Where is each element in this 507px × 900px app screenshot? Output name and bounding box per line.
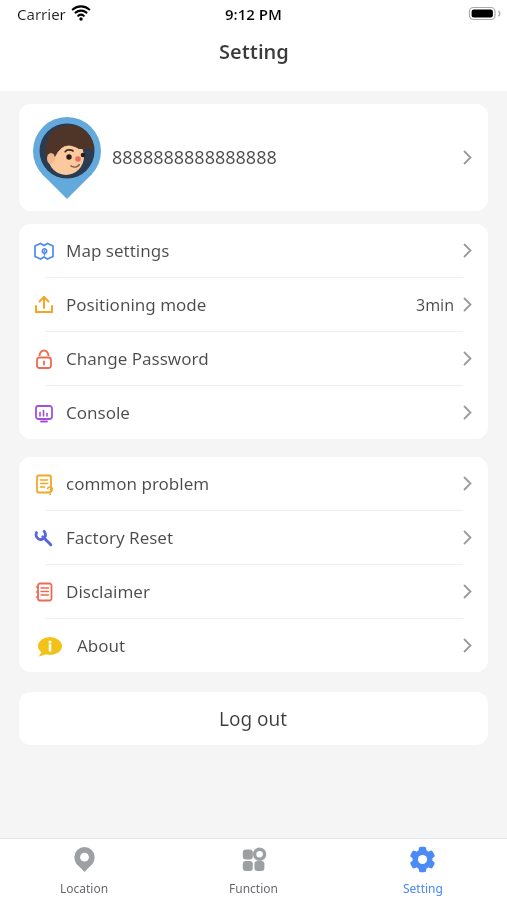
- button[interactable]: Function: [169, 839, 338, 900]
- staticText: Log out: [219, 706, 288, 732]
- staticText: Positioning mode: [66, 293, 207, 316]
- staticText: Function: [229, 880, 278, 896]
- staticText: About: [77, 634, 126, 657]
- staticText: 9:12 PM: [225, 4, 282, 24]
- staticText: Factory Reset: [66, 526, 174, 549]
- staticText: Map settings: [66, 239, 170, 262]
- staticText: Setting: [403, 880, 443, 896]
- staticText: common problem: [66, 472, 210, 495]
- button[interactable]: 8888888888888888: [19, 104, 488, 211]
- button[interactable]: Change Password: [19, 332, 488, 385]
- button[interactable]: Location: [0, 839, 169, 900]
- staticText: 8888888888888888: [112, 145, 277, 170]
- staticText: 3min: [416, 294, 455, 316]
- staticText: Setting: [219, 38, 289, 65]
- button[interactable]: Disclaimer: [19, 565, 488, 618]
- button[interactable]: Positioning mode: [19, 278, 488, 331]
- button[interactable]: Console: [19, 386, 488, 439]
- button[interactable]: Factory Reset: [19, 511, 488, 564]
- button[interactable]: About: [19, 619, 488, 672]
- staticText: Disclaimer: [66, 580, 150, 603]
- staticText: Location: [60, 880, 109, 896]
- staticText: Console: [66, 401, 130, 424]
- staticText: Carrier: [17, 4, 66, 24]
- button[interactable]: Log out: [19, 692, 488, 745]
- staticText: Change Password: [66, 347, 209, 370]
- button[interactable]: common problem: [19, 457, 488, 510]
- button[interactable]: Map settings: [19, 224, 488, 277]
- button[interactable]: Setting: [338, 839, 507, 900]
